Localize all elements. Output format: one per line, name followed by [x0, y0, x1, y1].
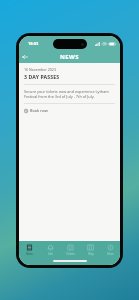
staticText: Info	[48, 252, 53, 256]
staticText: 16 November 2023	[24, 67, 56, 72]
staticText: Tickets	[66, 252, 75, 256]
staticText: Map	[88, 252, 94, 256]
button[interactable]: Tickets	[60, 241, 80, 258]
button[interactable]: Map	[80, 241, 100, 258]
staticText: 18:03	[28, 41, 39, 46]
button[interactable]: Book now	[24, 107, 48, 114]
button[interactable]: Back	[19, 51, 31, 63]
staticText: More	[107, 252, 114, 256]
button[interactable]: News	[19, 241, 40, 258]
staticText: Book now	[30, 108, 48, 113]
button[interactable]: Info	[40, 241, 60, 258]
staticText: NEWS	[60, 53, 79, 61]
staticText: 3 DAY PASSES	[24, 73, 60, 80]
staticText: News	[26, 252, 33, 256]
staticText: Secure your tickets now and experience L…	[24, 89, 115, 99]
button[interactable]: More	[100, 241, 120, 258]
